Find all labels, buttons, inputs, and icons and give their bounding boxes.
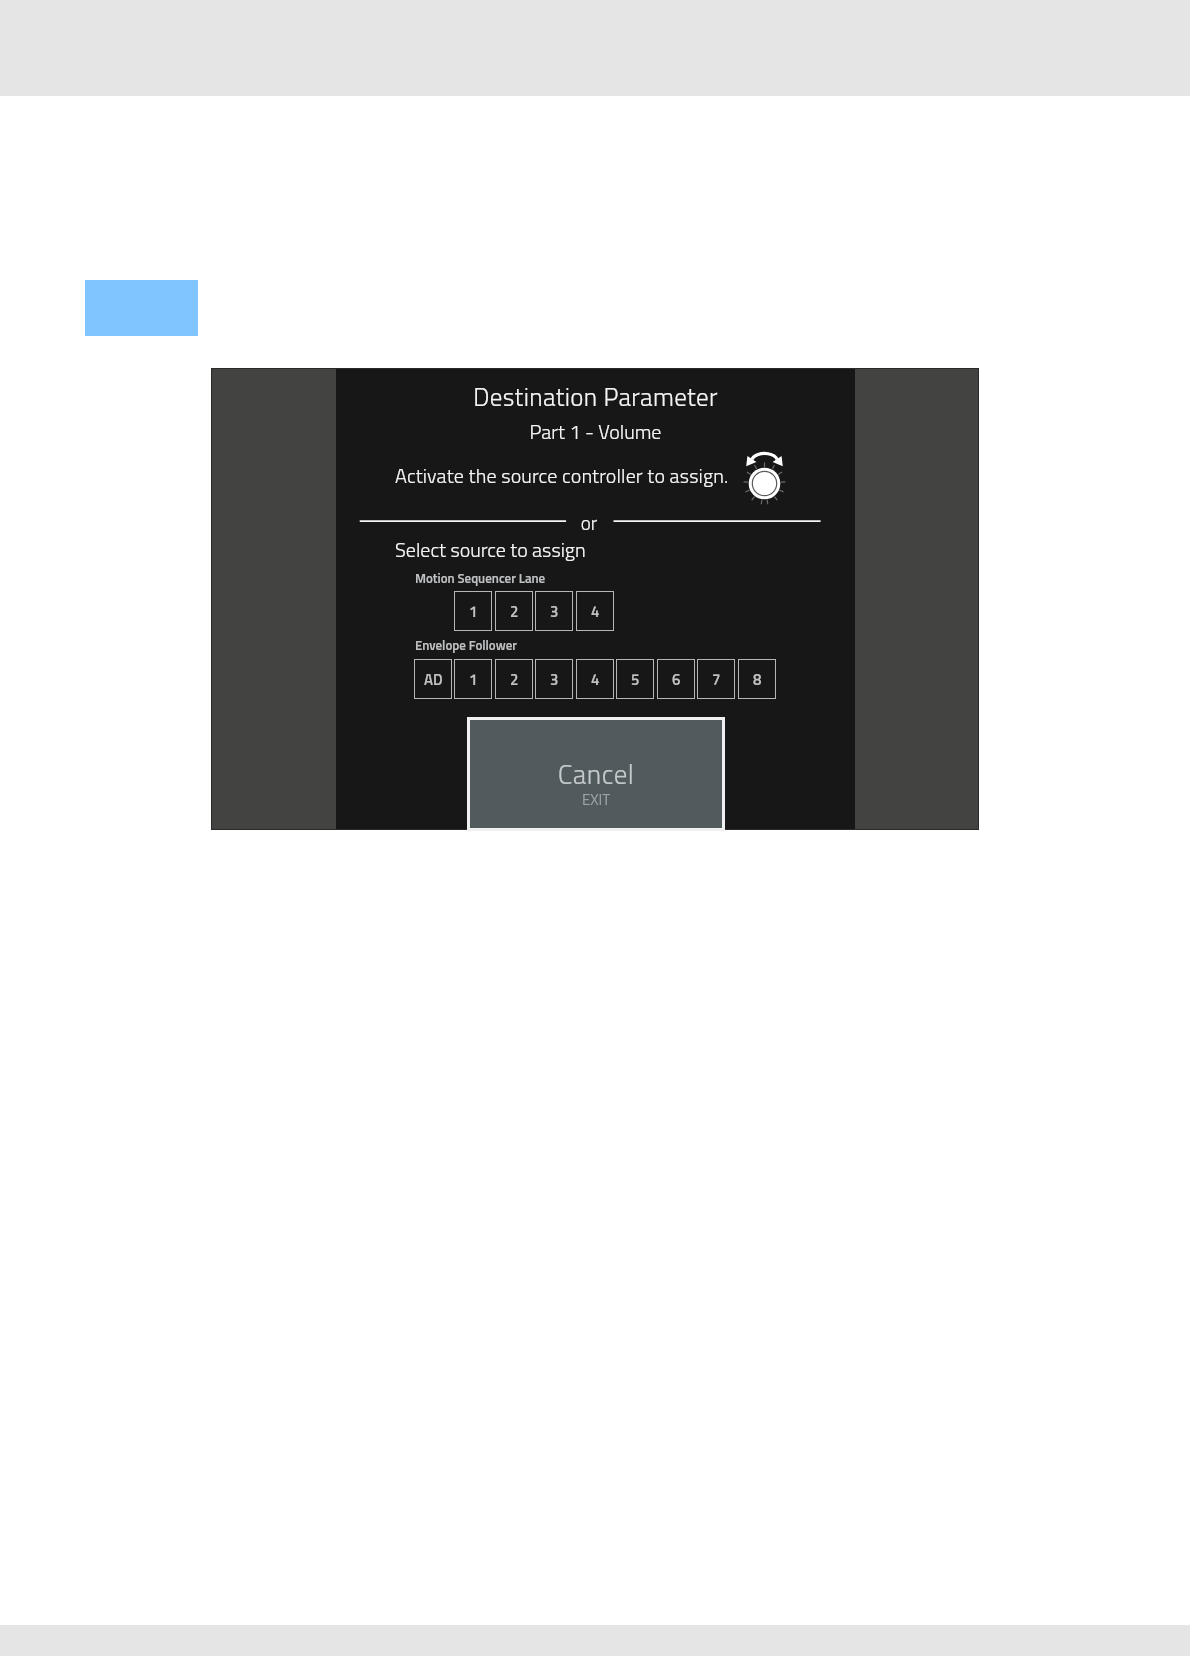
- staticText: 5: [631, 668, 640, 691]
- staticText: Activate the source controller to assign…: [395, 460, 729, 490]
- staticText: Envelope Follower: [415, 635, 518, 655]
- other: Rotate knob: [743, 450, 787, 501]
- staticText: 1: [469, 668, 478, 691]
- staticText: 7: [712, 668, 721, 691]
- button[interactable]: 2: [495, 659, 533, 699]
- staticText: Cancel: [470, 753, 722, 794]
- staticText: 2: [510, 668, 519, 691]
- button[interactable]: AD: [414, 659, 452, 699]
- staticText: 4: [591, 600, 600, 623]
- button[interactable]: Cancel: [470, 720, 722, 828]
- button[interactable]: 4: [576, 591, 614, 631]
- button[interactable]: 8: [738, 659, 776, 699]
- staticText: Part 1 - Volume: [336, 416, 855, 446]
- button[interactable]: 5: [616, 659, 654, 699]
- button[interactable]: 4: [576, 659, 614, 699]
- button[interactable]: 7: [697, 659, 735, 699]
- staticText: 2: [510, 600, 519, 623]
- staticText: 3: [550, 668, 559, 691]
- staticText: Motion Sequencer Lane: [415, 568, 546, 588]
- staticText: 3: [550, 600, 559, 623]
- button[interactable]: 1: [454, 659, 492, 699]
- staticText: Destination Parameter: [336, 378, 855, 416]
- button[interactable]: 6: [657, 659, 695, 699]
- staticText: 6: [672, 668, 681, 691]
- staticText: or: [580, 508, 598, 537]
- staticText: EXIT: [470, 788, 722, 811]
- button[interactable]: 2: [495, 591, 533, 631]
- button[interactable]: 1: [454, 591, 492, 631]
- staticText: 1: [469, 600, 478, 623]
- button[interactable]: 3: [535, 659, 573, 699]
- staticText: AD: [424, 668, 443, 691]
- staticText: 4: [591, 668, 600, 691]
- staticText: Select source to assign: [395, 534, 586, 564]
- button[interactable]: 3: [535, 591, 573, 631]
- staticText: 8: [753, 668, 762, 691]
